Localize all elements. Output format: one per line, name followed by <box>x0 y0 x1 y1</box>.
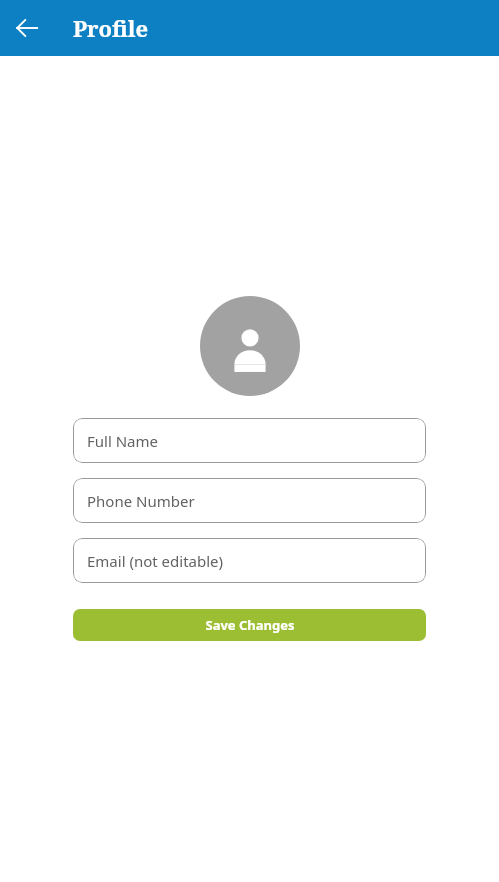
staticText: Phone Number <box>87 491 195 511</box>
staticText: Full Name <box>87 431 158 451</box>
button[interactable]: Full Name <box>73 418 426 463</box>
staticText: Save Changes <box>205 616 295 634</box>
button[interactable]: Profile photo <box>200 296 300 396</box>
button[interactable]: Email (not editable) <box>73 538 426 583</box>
staticText: Profile <box>73 13 149 43</box>
button[interactable]: Back <box>0 1 54 55</box>
staticText: Email (not editable) <box>87 551 224 571</box>
button[interactable]: Phone Number <box>73 478 426 523</box>
button[interactable]: Save Changes <box>73 609 426 641</box>
